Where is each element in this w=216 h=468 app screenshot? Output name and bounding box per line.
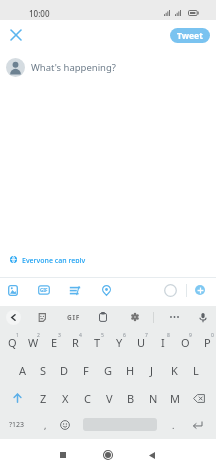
staticText: 3 <box>58 332 61 339</box>
button[interactable]: T <box>84 328 106 356</box>
button[interactable]: G <box>95 356 117 384</box>
staticText: M <box>170 391 180 406</box>
button[interactable]: W <box>21 328 42 356</box>
staticText: Q <box>8 335 17 350</box>
button[interactable]: Recent apps <box>50 442 76 468</box>
staticText: O <box>181 335 190 350</box>
button[interactable]: H <box>117 356 139 384</box>
button[interactable]: L <box>183 356 205 384</box>
staticText: L <box>193 363 199 378</box>
staticText: F <box>83 363 89 378</box>
staticText: U <box>137 335 146 350</box>
button[interactable]: Enter <box>178 412 216 437</box>
button[interactable]: F <box>73 356 95 384</box>
button[interactable]: Stickers <box>31 306 53 328</box>
staticText: 10:00 <box>29 8 50 19</box>
button[interactable]: Z <box>31 384 52 412</box>
staticText: What's happening? <box>31 61 116 74</box>
staticText: , <box>44 419 47 431</box>
button[interactable]: Home <box>95 442 121 468</box>
button[interactable]: A <box>10 356 31 384</box>
staticText: 7 <box>145 332 148 339</box>
staticText: 1 <box>16 332 19 339</box>
button[interactable]: Everyone can reply <box>10 256 216 263</box>
button[interactable]: Add photo <box>2 279 24 301</box>
button[interactable]: Clipboard <box>92 306 114 328</box>
button[interactable]: P <box>194 328 216 356</box>
staticText: H <box>126 363 135 378</box>
staticText: Y <box>116 335 123 350</box>
button[interactable]: X <box>52 384 74 412</box>
button[interactable]: Y <box>106 328 128 356</box>
button[interactable]: U <box>128 328 150 356</box>
staticText: 0 <box>211 332 214 339</box>
button[interactable]: E <box>42 328 63 356</box>
button[interactable]: Create poll <box>64 279 86 301</box>
button[interactable]: Back <box>139 442 165 468</box>
staticText: J <box>150 363 154 378</box>
staticText: T <box>94 335 101 350</box>
button[interactable]: D <box>52 356 73 384</box>
staticText: W <box>28 335 39 350</box>
button[interactable]: , <box>34 412 55 437</box>
button[interactable]: C <box>74 384 96 412</box>
button[interactable]: K <box>161 356 183 384</box>
staticText: GIF <box>40 287 48 293</box>
button[interactable]: S <box>31 356 52 384</box>
staticText: 9 <box>189 332 192 339</box>
staticText: 4 <box>79 332 82 339</box>
button[interactable]: R <box>63 328 84 356</box>
staticText: 2 <box>37 332 40 339</box>
staticText: V <box>106 391 113 406</box>
button[interactable]: Backspace <box>184 384 216 412</box>
staticText: P <box>204 335 211 350</box>
staticText: Z <box>40 391 47 406</box>
button[interactable]: . <box>166 412 178 437</box>
button[interactable]: Tweet <box>170 28 210 43</box>
staticText: . <box>172 419 175 431</box>
button[interactable]: GIF keyboard <box>62 306 84 328</box>
staticText: R <box>72 335 79 350</box>
button[interactable]: More options <box>163 306 185 328</box>
staticText: D <box>60 363 69 378</box>
button[interactable]: Emoji <box>55 412 74 437</box>
button[interactable]: N <box>140 384 162 412</box>
staticText: X <box>62 391 69 406</box>
staticText: N <box>149 391 158 406</box>
button[interactable]: M <box>162 384 184 412</box>
button[interactable]: Close <box>5 24 27 46</box>
staticText: 5 <box>101 332 104 339</box>
button[interactable]: Voice input <box>192 306 214 328</box>
staticText: Tweet <box>177 30 203 42</box>
button[interactable]: I <box>150 328 172 356</box>
button[interactable]: J <box>139 356 161 384</box>
button[interactable]: Shift <box>0 384 31 412</box>
staticText: G <box>104 363 113 378</box>
staticText: GIF <box>67 313 80 322</box>
button[interactable]: Add GIF <box>33 279 55 301</box>
staticText: E <box>51 335 58 350</box>
staticText: 6 <box>123 332 126 339</box>
staticText: 8 <box>167 332 170 339</box>
button[interactable]: Add another tweet <box>189 279 211 301</box>
staticText: S <box>40 363 47 378</box>
staticText: I <box>161 335 165 350</box>
staticText: ?123 <box>9 420 25 430</box>
button[interactable]: ?123 <box>0 412 34 437</box>
staticText: B <box>127 391 135 406</box>
staticText: A <box>19 363 27 378</box>
staticText: C <box>84 391 91 406</box>
staticText: K <box>171 363 178 378</box>
button[interactable]: Add location <box>95 279 117 301</box>
button[interactable]: O <box>172 328 194 356</box>
button[interactable]: V <box>96 384 118 412</box>
staticText: Everyone can reply <box>22 256 86 263</box>
button[interactable]: Q <box>0 328 21 356</box>
button[interactable]: B <box>118 384 140 412</box>
button[interactable]: Settings <box>124 306 146 328</box>
button[interactable]: Back <box>6 310 21 325</box>
